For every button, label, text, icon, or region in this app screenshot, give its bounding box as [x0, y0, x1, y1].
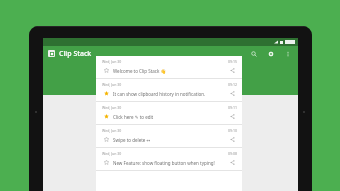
staticText: Welcome to Clip Stack 👋	[113, 68, 167, 74]
staticText: 09:12	[228, 82, 237, 87]
staticText: Wed, Jun 30	[102, 151, 122, 156]
button[interactable]: Share	[228, 66, 237, 75]
staticText: Wed, Jun 30	[102, 82, 122, 87]
staticText: New Feature: show floating button when t…	[113, 160, 215, 166]
button[interactable]: Wed, Jun 30	[96, 79, 242, 101]
button[interactable]: Wed, Jun 30	[96, 125, 242, 147]
staticText: Wed, Jun 30	[102, 128, 122, 133]
staticText: Clip Stack	[59, 49, 92, 59]
button[interactable]: Share	[228, 158, 237, 167]
button[interactable]: Settings	[265, 48, 276, 59]
staticText: Wed, Jun 30	[102, 105, 122, 110]
staticText: 09:11	[228, 105, 237, 110]
button[interactable]: Unstar	[102, 89, 111, 98]
button[interactable]: Clip Stack	[59, 49, 92, 59]
button[interactable]: Star	[102, 158, 111, 167]
staticText: 09:10	[228, 128, 237, 133]
staticText: 09:08	[228, 151, 237, 156]
button[interactable]: Wed, Jun 30	[96, 56, 242, 78]
staticText: Wed, Jun 30	[102, 59, 122, 64]
staticText: Swipe to delete ↔	[113, 137, 151, 143]
button[interactable]: Star	[102, 135, 111, 144]
button[interactable]: Wed, Jun 30	[96, 102, 242, 124]
button[interactable]: Share	[228, 135, 237, 144]
button[interactable]: Search	[248, 48, 259, 59]
staticText: It can show clipboard history in notific…	[113, 91, 206, 97]
button[interactable]: Wed, Jun 30	[96, 148, 242, 170]
button[interactable]: Share	[228, 89, 237, 98]
staticText: 09:15	[228, 59, 237, 64]
button[interactable]: Unstar	[102, 112, 111, 121]
button[interactable]: Star	[102, 66, 111, 75]
button[interactable]: App icon	[48, 50, 55, 57]
button[interactable]: More options	[282, 48, 293, 59]
staticText: Click here ✎ to edit	[113, 114, 154, 120]
button[interactable]: Share	[228, 112, 237, 121]
